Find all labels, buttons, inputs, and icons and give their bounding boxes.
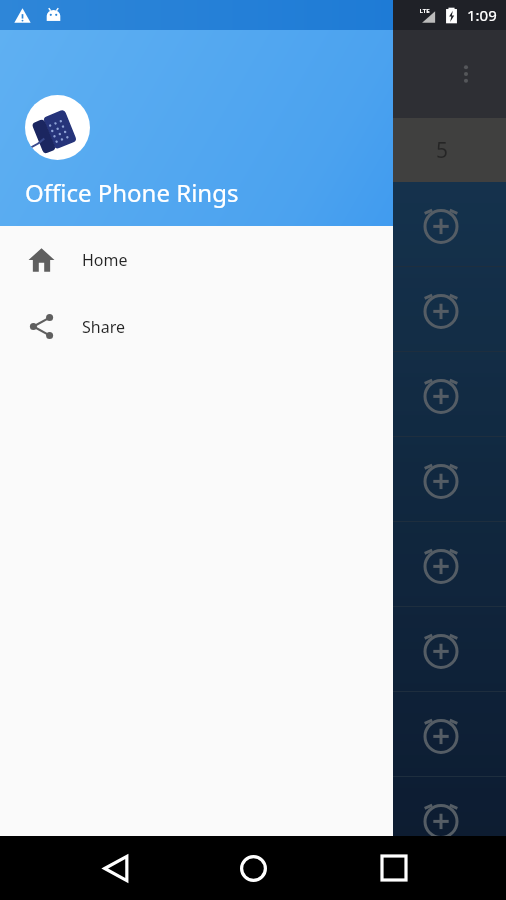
button[interactable] bbox=[0, 522, 506, 606]
button[interactable]: Home bbox=[220, 836, 286, 900]
staticText: 5 bbox=[436, 136, 449, 165]
staticText: Share bbox=[82, 316, 125, 338]
button[interactable] bbox=[0, 267, 506, 351]
button[interactable]: Recent apps bbox=[361, 836, 427, 900]
button[interactable] bbox=[0, 692, 506, 776]
button[interactable] bbox=[0, 118, 126, 182]
button[interactable] bbox=[0, 437, 506, 521]
staticText: 1:09 bbox=[467, 5, 497, 25]
button[interactable] bbox=[0, 607, 506, 691]
button[interactable] bbox=[0, 777, 506, 861]
button[interactable]: More options bbox=[442, 50, 490, 98]
button[interactable] bbox=[0, 862, 506, 900]
button[interactable]: Home bbox=[0, 226, 393, 293]
button[interactable] bbox=[0, 30, 506, 836]
button[interactable] bbox=[0, 352, 506, 436]
staticText: Home bbox=[82, 249, 128, 271]
button[interactable]: Back bbox=[82, 836, 148, 900]
staticText: Office Phone Rings bbox=[25, 176, 239, 209]
button[interactable]: Share bbox=[0, 293, 393, 360]
button[interactable]: 5 bbox=[379, 118, 506, 182]
button[interactable] bbox=[0, 182, 506, 266]
staticText: LTE bbox=[419, 7, 430, 15]
button[interactable]: Office Phone Rings bbox=[0, 30, 393, 226]
